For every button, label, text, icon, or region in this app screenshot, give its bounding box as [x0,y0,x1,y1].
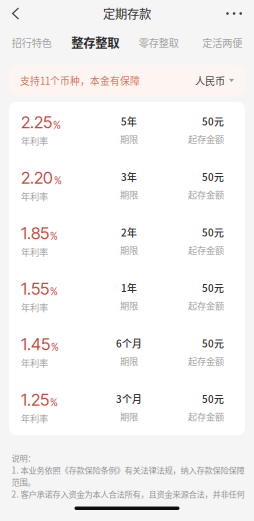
button[interactable]: 1.25 [9,379,245,435]
staticText: 1.25 [21,389,49,410]
button[interactable]: More [212,0,254,27]
button[interactable]: 人民币 [195,65,245,96]
button[interactable]: 1.45 [9,324,245,379]
staticText: 整存整取 [71,34,119,51]
staticText: 起存金额 [188,410,224,423]
staticText: 3个月 [116,391,142,406]
staticText: 1.85 [21,223,49,243]
staticText: 50元 [202,169,224,184]
button[interactable]: 2.20 [9,157,245,213]
staticText: 定期存款 [103,5,151,22]
staticText: 范围。 [11,476,35,488]
staticText: 1. 本业务依照《存款保险条例》有关法律法规，纳入存款保险保障 [11,464,244,476]
staticText: 年利率 [21,134,48,147]
staticText: 6个月 [116,336,142,350]
staticText: 1.55 [21,278,49,299]
staticText: 期限 [120,243,138,256]
staticText: 期限 [120,132,138,145]
button[interactable]: 零存整取 [127,27,190,58]
staticText: 3年 [121,169,137,184]
staticText: 5年 [121,114,137,128]
staticText: 起存金额 [188,299,224,312]
staticText: 2.25 [21,112,52,132]
staticText: 期限 [120,188,138,201]
staticText: 50元 [202,225,224,239]
button[interactable]: 2.25 [9,102,245,157]
staticText: 年利率 [21,301,48,314]
staticText: 起存金额 [188,354,224,367]
staticText: % [54,174,62,187]
button[interactable]: 整存整取 [63,27,127,58]
staticText: 期限 [120,299,138,312]
staticText: 2. 客户承诺存入资金为本人合法所有，且资金来源合法，并非任何 [11,488,244,500]
button[interactable]: 定活两便 [190,27,254,58]
staticText: % [53,119,61,131]
staticText: 说明： [11,452,35,464]
staticText: 起存金额 [188,188,224,201]
staticText: 招行特色 [12,35,52,50]
staticText: 期限 [120,410,138,423]
button[interactable]: Back [0,0,35,27]
staticText: % [51,341,59,353]
staticText: 起存金额 [188,243,224,256]
staticText: % [50,285,58,298]
staticText: 1年 [121,280,137,295]
staticText: 2.20 [21,167,53,188]
staticText: 2年 [121,225,137,239]
staticText: % [50,396,58,409]
staticText: 50元 [202,391,224,406]
button[interactable]: 1.55 [9,268,245,324]
staticText: 年利率 [21,245,48,258]
staticText: 零存整取 [139,35,179,50]
staticText: 人民币 [195,73,225,88]
staticText: 年利率 [21,190,48,203]
staticText: 起存金额 [188,132,224,145]
staticText: 50元 [202,280,224,295]
staticText: % [50,230,58,242]
staticText: 年利率 [21,356,48,369]
staticText: 1.45 [21,334,50,354]
staticText: 期限 [120,354,138,367]
staticText: 50元 [202,336,224,350]
staticText: 定活两便 [202,35,242,50]
staticText: 年利率 [21,412,48,425]
staticText: 50元 [202,114,224,128]
button[interactable]: 1.85 [9,213,245,268]
button[interactable]: 招行特色 [0,27,63,58]
staticText: 支持11个币种，本金有保障 [20,73,140,88]
